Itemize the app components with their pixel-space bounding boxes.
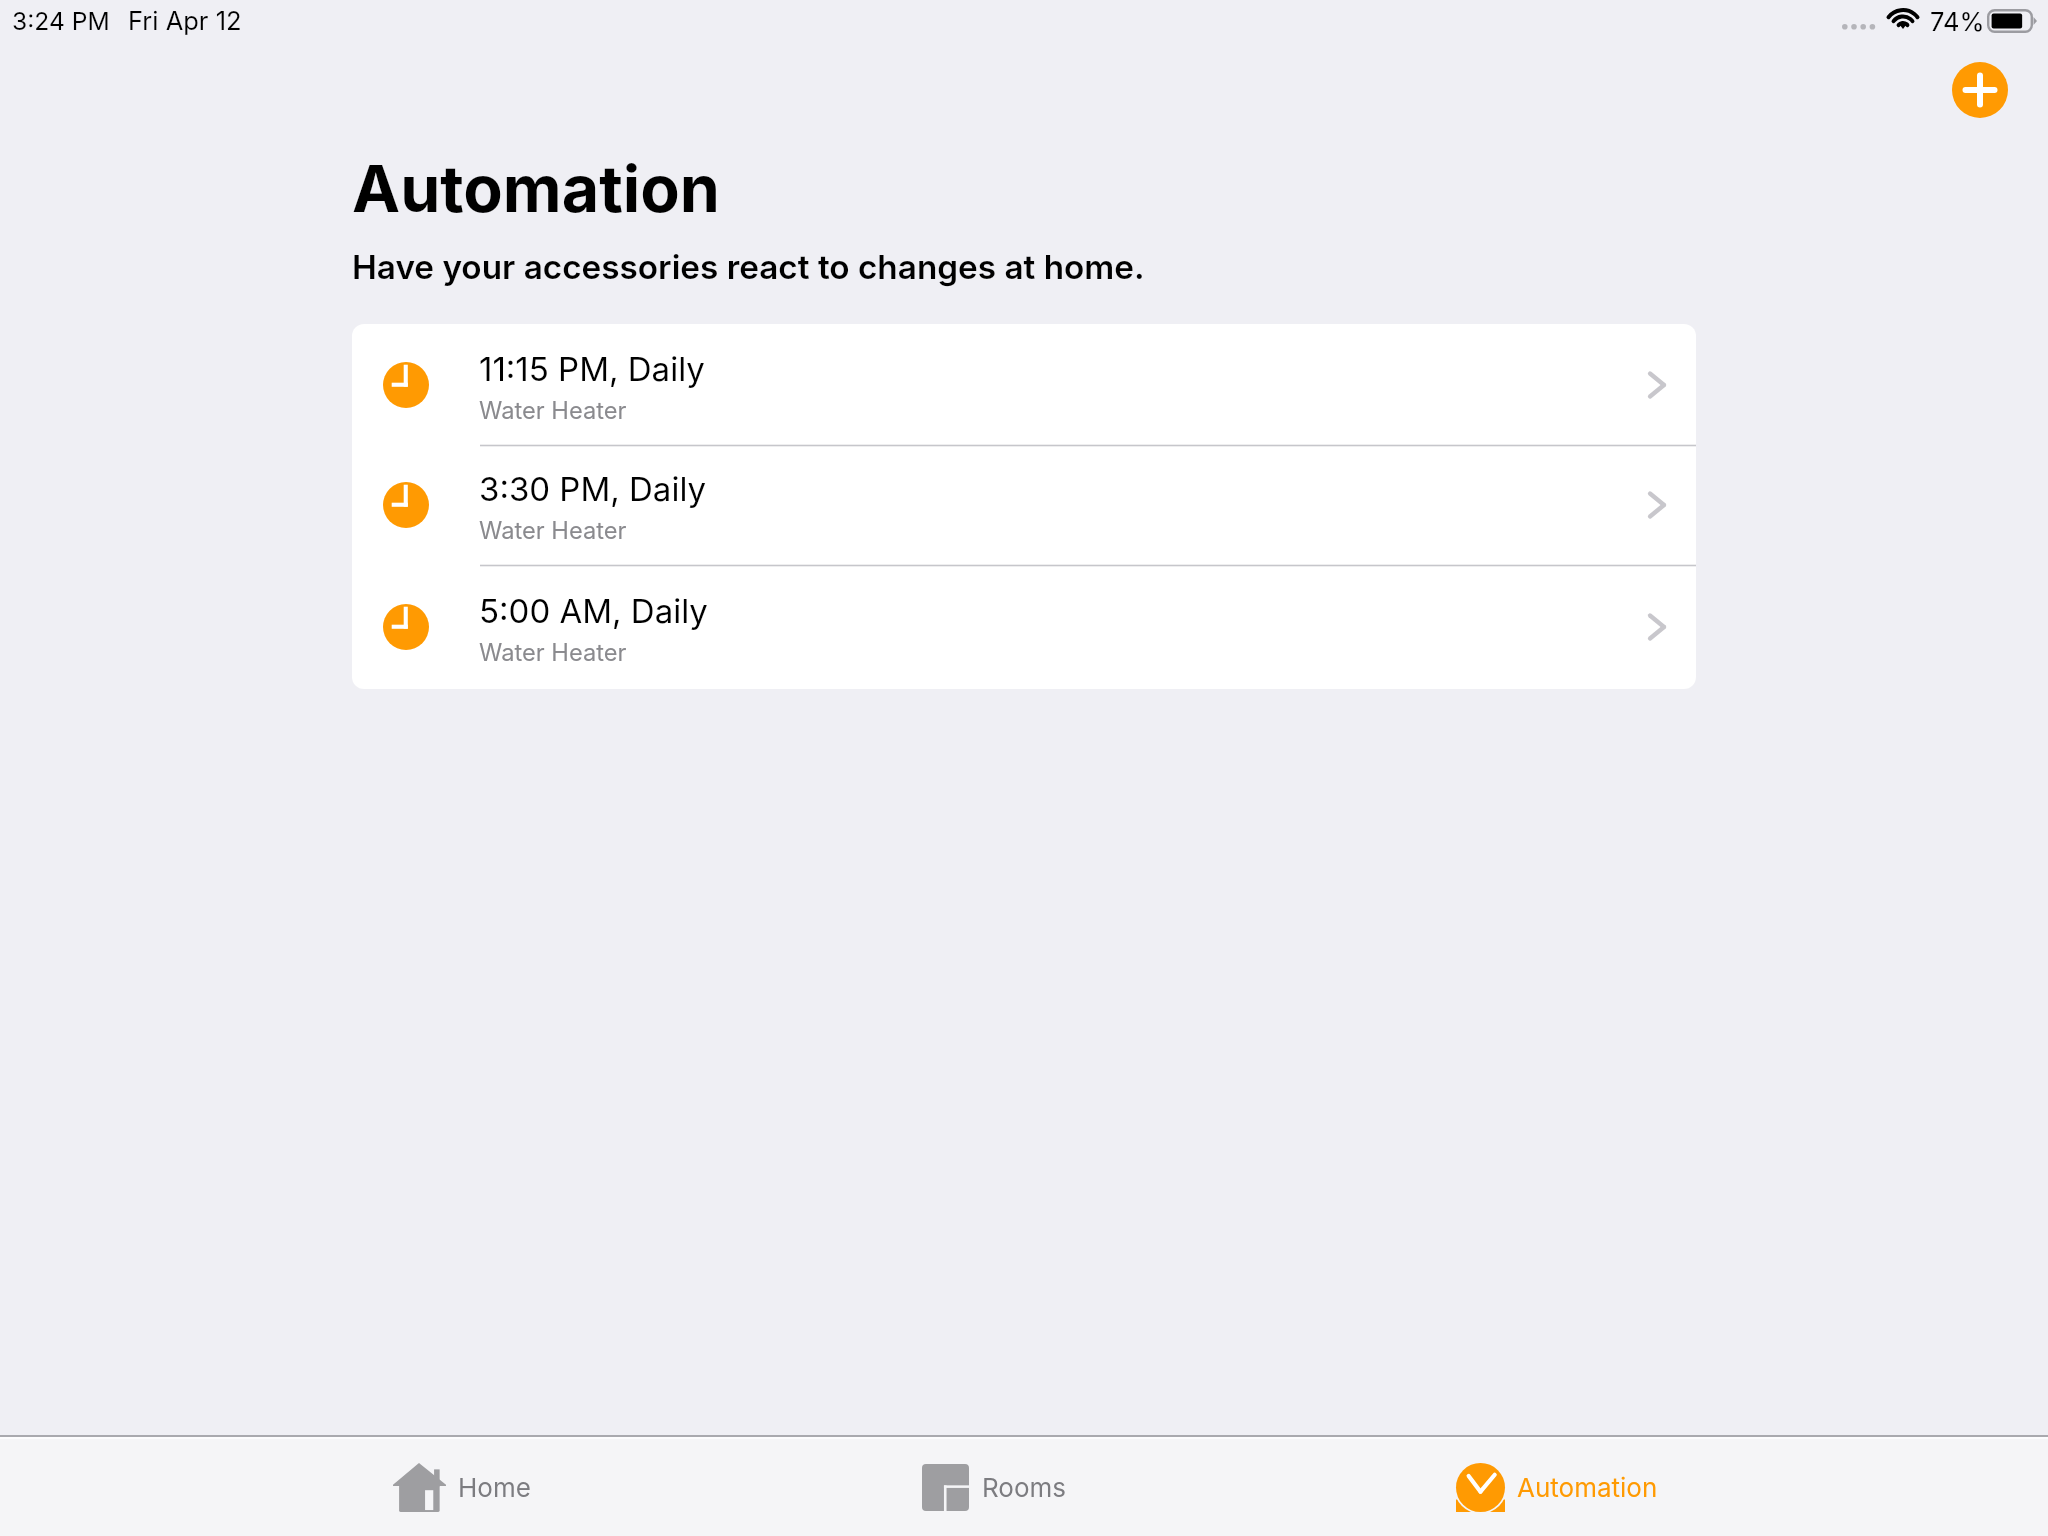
button[interactable]: Home — [393, 1439, 531, 1536]
button[interactable]: Automation — [1454, 1439, 1658, 1536]
staticText: Water Heater — [479, 638, 627, 667]
button[interactable]: Add automation — [1952, 62, 2008, 118]
staticText: Automation — [1517, 1472, 1658, 1503]
button[interactable]: 3:30 PM, Daily — [352, 445, 1696, 565]
staticText: 3:30 PM, Daily — [479, 469, 707, 509]
button[interactable]: Rooms — [922, 1439, 1067, 1536]
staticText: 5:00 AM, Daily — [479, 591, 708, 631]
staticText: Have your accessories react to changes a… — [352, 247, 1145, 287]
staticText: 3:24 PM — [12, 6, 110, 36]
staticText: Water Heater — [479, 396, 627, 425]
staticText: Water Heater — [479, 516, 627, 545]
staticText: Fri Apr 12 — [128, 5, 242, 36]
staticText: Home — [458, 1472, 531, 1503]
button[interactable]: 5:00 AM, Daily — [352, 565, 1696, 689]
button[interactable]: 11:15 PM, Daily — [352, 324, 1696, 445]
staticText: 11:15 PM, Daily — [479, 349, 705, 389]
staticText: Automation — [352, 150, 720, 228]
staticText: 74% — [1930, 6, 1985, 37]
staticText: Rooms — [982, 1472, 1067, 1503]
